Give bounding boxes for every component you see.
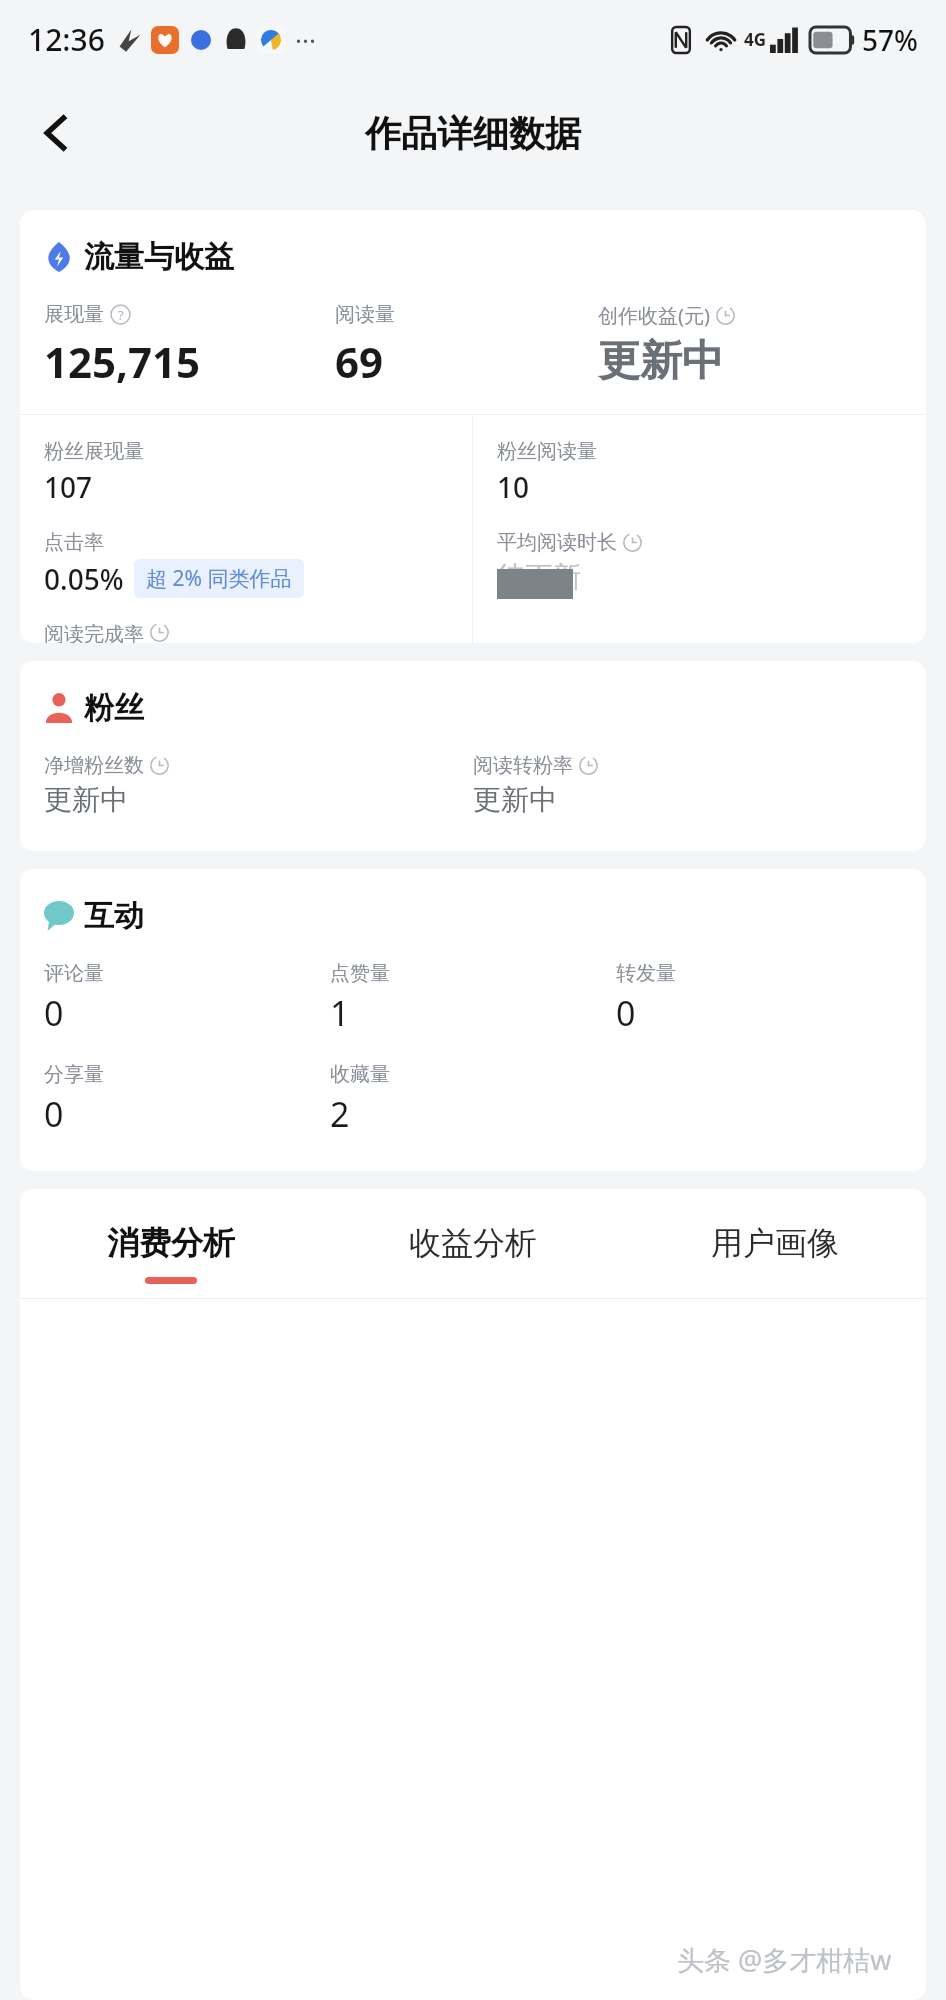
staticText: 阅读转粉率	[473, 753, 573, 778]
staticText: 0.05%	[44, 560, 124, 598]
staticText: 2	[330, 1091, 350, 1137]
staticText: 57%	[862, 21, 918, 59]
button[interactable]: 收益分析	[322, 1223, 624, 1284]
staticText: 用户画像	[711, 1223, 839, 1263]
staticText: ?	[118, 306, 124, 324]
staticText: 净增粉丝数	[44, 753, 144, 778]
staticText: 1	[330, 990, 350, 1036]
staticText: 作品详细数据	[365, 111, 581, 156]
staticText: 消费分析	[107, 1223, 235, 1263]
staticText: 收益分析	[409, 1223, 537, 1263]
staticText: 更新中	[473, 782, 557, 817]
staticText: 互动	[84, 897, 144, 935]
button[interactable]: 用户画像	[624, 1223, 926, 1284]
staticText: 创作收益(元)	[598, 302, 710, 329]
staticText: 更新中	[44, 782, 128, 817]
staticText: 0	[44, 990, 64, 1036]
staticText: 粉丝	[84, 689, 144, 727]
staticText: 107	[44, 468, 93, 506]
staticText: 阅读完成率	[44, 622, 144, 643]
staticText: 12:36	[28, 19, 105, 60]
staticText: 平均阅读时长	[497, 530, 617, 555]
staticText: 点击率	[44, 530, 104, 555]
staticText: 10	[497, 468, 530, 506]
staticText: 粉丝展现量	[44, 439, 144, 464]
staticText: 收藏量	[330, 1062, 390, 1087]
staticText: 评论量	[44, 961, 104, 986]
staticText: 流量与收益	[84, 238, 234, 276]
staticText: 点赞量	[330, 961, 390, 986]
staticText: 待更新	[497, 559, 581, 594]
button[interactable]: 消费分析	[20, 1223, 322, 1284]
staticText: 更新中	[598, 335, 724, 388]
staticText: 展现量	[44, 302, 104, 327]
staticText: 0	[44, 1091, 64, 1137]
staticText: 分享量	[44, 1062, 104, 1087]
staticText: 阅读量	[335, 302, 395, 327]
staticText: ···	[295, 22, 316, 57]
staticText: 超 2% 同类作品	[146, 564, 292, 593]
staticText: 4G	[744, 28, 767, 51]
staticText: 头条 @多才柑桔w	[677, 1941, 892, 1978]
staticText: 0	[616, 990, 636, 1036]
button[interactable]: Back	[20, 97, 92, 169]
staticText: 69	[335, 333, 384, 390]
staticText: 转发量	[616, 961, 676, 986]
staticText: 粉丝阅读量	[497, 439, 597, 464]
staticText: 125,715	[44, 333, 201, 390]
